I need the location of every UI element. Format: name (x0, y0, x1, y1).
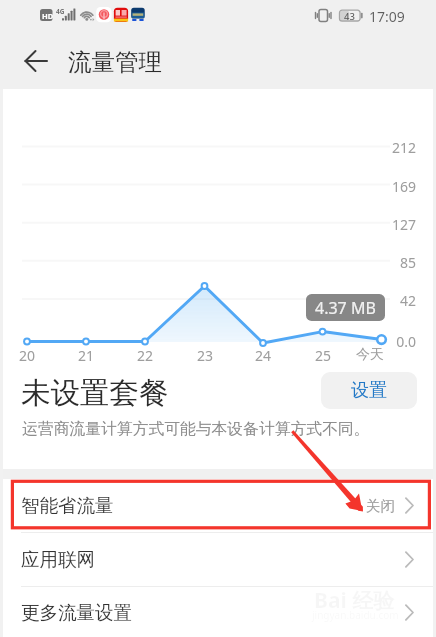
staticText: 212 (386, 138, 416, 157)
staticText: 43 (344, 10, 355, 23)
button[interactable]: 智能省流量 (0, 479, 436, 532)
button[interactable]: 更多流量设置 (0, 587, 436, 637)
button[interactable]: 应用联网 (0, 533, 436, 586)
staticText: 169 (386, 177, 416, 196)
staticText: 42 (386, 291, 416, 310)
staticText: 17:09 (369, 7, 405, 26)
staticText: 0.0 (386, 332, 416, 351)
staticText: 智能省流量 (21, 494, 114, 517)
staticText: 24 (238, 346, 288, 365)
staticText: 4G (56, 7, 65, 16)
staticText: 4.37 MB (315, 297, 376, 319)
staticText: 更多流量设置 (21, 601, 132, 624)
staticText: HD (42, 11, 54, 21)
staticText: 21 (61, 346, 111, 365)
staticText: 25 (298, 346, 348, 365)
staticText: 关闭 (366, 497, 395, 515)
staticText: Bai 经验 (314, 586, 395, 615)
staticText: 127 (386, 215, 416, 234)
button[interactable]: 设置 (321, 372, 417, 409)
staticText: 23 (180, 346, 230, 365)
staticText: 今天 (345, 346, 395, 364)
staticText: 85 (386, 253, 416, 272)
staticText: 运营商流量计算方式可能与本设备计算方式不同。 (22, 419, 370, 439)
button[interactable]: Back (14, 38, 58, 82)
staticText: 流量管理 (68, 47, 162, 77)
staticText: 22 (120, 346, 170, 365)
staticText: 设置 (351, 379, 387, 402)
staticText: 20 (2, 346, 52, 365)
staticText: 未设置套餐 (21, 375, 169, 412)
staticText: 应用联网 (21, 548, 95, 571)
